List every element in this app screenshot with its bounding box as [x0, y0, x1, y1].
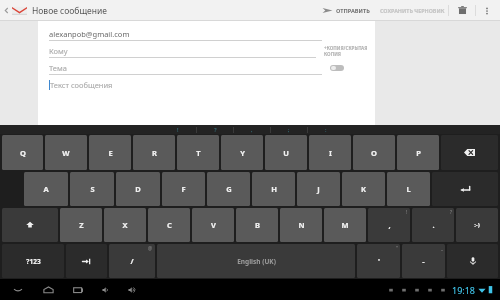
staticText: ? — [450, 209, 452, 215]
staticText: D — [135, 184, 141, 194]
staticText: ' — [378, 256, 380, 266]
staticText: ?123 — [26, 257, 41, 266]
staticText: ! — [177, 126, 179, 134]
staticText: English (UK) — [237, 257, 276, 266]
button[interactable]: V — [192, 208, 234, 242]
staticText: Y — [240, 148, 245, 158]
button[interactable]: T — [177, 135, 219, 170]
button[interactable]: D — [116, 172, 160, 206]
button[interactable]: O — [353, 135, 395, 170]
button[interactable]: More options — [476, 0, 498, 21]
staticText: Текст сообщения — [50, 80, 113, 90]
staticText: Кому — [49, 46, 68, 56]
button[interactable]: English (UK) — [157, 244, 355, 278]
button[interactable]: Volume up — [124, 279, 140, 300]
staticText: A — [43, 184, 49, 194]
button[interactable]: . — [412, 208, 454, 242]
staticText: " — [396, 245, 398, 251]
button[interactable]: Кому — [49, 44, 316, 58]
staticText: G — [226, 184, 232, 194]
staticText: 19:18 — [452, 284, 476, 296]
button[interactable]: alexanpob@gmail.com — [49, 27, 322, 41]
button[interactable]: : — [308, 125, 344, 134]
button[interactable]: +КОПИЯ/СКРЫТАЯ КОПИЯ — [324, 45, 372, 57]
staticText: / — [130, 256, 134, 266]
staticText: Z — [79, 220, 84, 230]
staticText: Тема — [49, 63, 67, 73]
button[interactable]: ' — [357, 244, 400, 278]
button[interactable]: ОТПРАВИТЬ — [319, 0, 373, 21]
button[interactable]: Z — [60, 208, 102, 242]
button[interactable]: Attach — [330, 65, 344, 71]
button[interactable]: X — [104, 208, 146, 242]
button[interactable]: Recent apps — [70, 279, 86, 300]
staticText: :-) — [474, 221, 480, 229]
staticText: L — [406, 184, 411, 194]
staticText: P — [416, 148, 421, 158]
button[interactable]: E — [89, 135, 131, 170]
staticText: R — [152, 148, 157, 158]
button[interactable]: Q — [2, 135, 43, 170]
staticText: B — [255, 220, 260, 230]
button[interactable]: - — [402, 244, 445, 278]
button[interactable]: J — [297, 172, 340, 206]
button[interactable]: ! — [160, 125, 196, 134]
button[interactable]: enter — [432, 172, 498, 206]
staticText: H — [271, 184, 277, 194]
button[interactable]: F — [162, 172, 205, 206]
button[interactable]: СОХРАНИТЬ ЧЕРНОВИК — [377, 4, 448, 17]
staticText: ! — [406, 209, 408, 215]
staticText: Q — [20, 148, 26, 158]
staticText: O — [371, 148, 377, 158]
button[interactable]: Back — [2, 0, 10, 21]
staticText: W — [62, 148, 70, 158]
button[interactable]: N — [280, 208, 322, 242]
staticText: E — [108, 148, 113, 158]
button[interactable]: W — [45, 135, 87, 170]
button[interactable]: R — [133, 135, 175, 170]
button[interactable]: ? — [197, 125, 233, 134]
button[interactable]: A — [24, 172, 68, 206]
button[interactable]: tab — [66, 244, 107, 278]
staticText: T — [196, 148, 201, 158]
button[interactable]: shift — [2, 208, 58, 242]
button[interactable]: Delete draft — [449, 0, 475, 21]
button[interactable]: Hide keyboard — [10, 279, 26, 300]
button[interactable]: :-) — [456, 208, 498, 242]
button[interactable]: G — [207, 172, 250, 206]
staticText: @ — [148, 245, 153, 251]
button[interactable]: , — [234, 125, 270, 134]
staticText: J — [317, 184, 320, 194]
button[interactable]: S — [70, 172, 114, 206]
button[interactable]: / — [109, 244, 155, 278]
staticText: : — [325, 126, 327, 134]
button[interactable]: backspace — [441, 135, 498, 170]
staticText: Новое сообщение — [32, 5, 107, 17]
button[interactable]: Volume down — [98, 279, 114, 300]
button[interactable]: ; — [271, 125, 307, 134]
staticText: I — [329, 148, 332, 158]
staticText: alexanpob@gmail.com — [49, 29, 130, 39]
button[interactable]: L — [387, 172, 430, 206]
staticText: СОХРАНИТЬ ЧЕРНОВИК — [380, 7, 445, 14]
button[interactable]: H — [252, 172, 295, 206]
button[interactable]: Home — [40, 279, 56, 300]
button[interactable]: Тема — [49, 61, 322, 75]
staticText: ; — [288, 126, 290, 134]
button[interactable]: B — [236, 208, 278, 242]
button[interactable]: mic — [447, 244, 498, 278]
button[interactable]: Y — [221, 135, 263, 170]
staticText: C — [167, 220, 172, 230]
button[interactable]: K — [342, 172, 385, 206]
button[interactable]: P — [397, 135, 439, 170]
staticText: S — [90, 184, 95, 194]
button[interactable]: C — [148, 208, 190, 242]
button[interactable]: M — [324, 208, 366, 242]
button[interactable]: , — [368, 208, 410, 242]
button[interactable]: ?123 — [2, 244, 64, 278]
staticText: , — [388, 220, 391, 230]
button[interactable]: U — [265, 135, 307, 170]
staticText: N — [298, 220, 305, 230]
button[interactable]: I — [309, 135, 351, 170]
staticText: U — [283, 148, 289, 158]
